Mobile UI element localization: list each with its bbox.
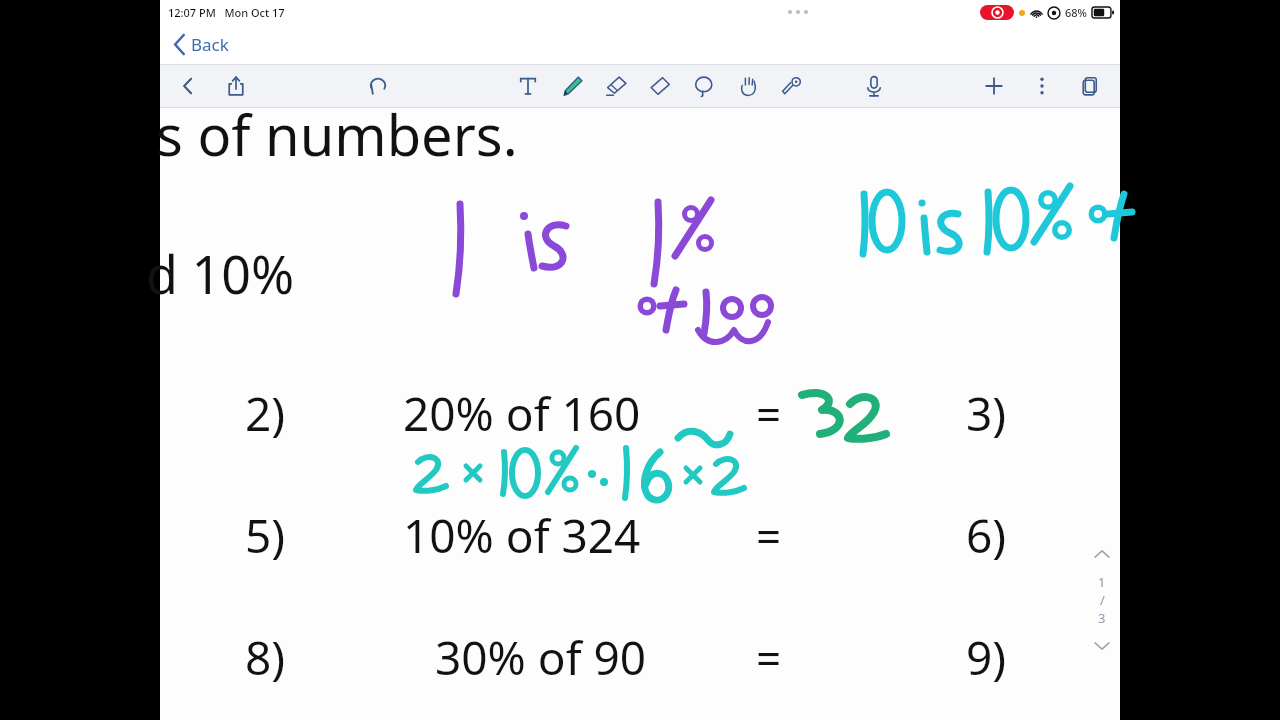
staticText: 5) [245,504,286,567]
button[interactable]: More options [1026,70,1058,102]
button[interactable]: Highlighter [600,70,632,102]
button[interactable]: Lasso [688,70,720,102]
staticText: / [1100,591,1105,609]
staticText: = [756,506,782,566]
button[interactable]: Hand tool [732,70,764,102]
staticText: 12:07 PM Mon Oct 17 [168,5,285,20]
staticText: 68% [1065,5,1087,20]
staticText: 6) [966,504,1007,567]
staticText: 10% of 324 [403,504,641,567]
button[interactable]: Share [220,70,252,102]
staticText: d 10% [146,238,295,309]
button[interactable]: Add [978,70,1010,102]
button[interactable]: Text tool [512,70,544,102]
button[interactable]: Back [170,29,233,60]
staticText: 2) [245,382,286,445]
button[interactable]: Pages [1074,70,1106,102]
button[interactable]: Pen tool [556,70,588,102]
staticText: 3 [1098,609,1106,627]
button[interactable]: Next page [1091,635,1113,657]
button[interactable]: Laser pointer [776,70,808,102]
staticText: = [756,384,782,444]
button[interactable]: Previous page [1091,543,1113,565]
staticText: 9) [966,626,1007,689]
staticText: 8) [245,626,286,689]
staticText: 30% of 90 [435,626,647,689]
staticText: s of numbers. [156,96,518,172]
staticText: 20% of 160 [403,382,641,445]
staticText: 3) [966,382,1007,445]
button[interactable]: Microphone [858,70,890,102]
button[interactable]: Undo [362,70,394,102]
button[interactable]: Eraser [644,70,676,102]
staticText: Back [191,33,229,56]
staticText: 1 [1098,573,1106,591]
staticText: = [756,628,782,688]
button[interactable]: Back [172,70,204,102]
